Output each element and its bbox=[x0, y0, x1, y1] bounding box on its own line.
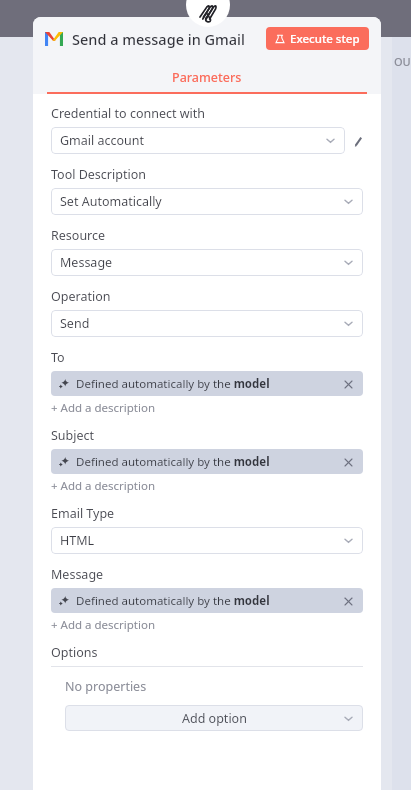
staticText: No properties bbox=[65, 678, 147, 695]
button[interactable]: HTML bbox=[51, 527, 363, 554]
button[interactable]: + Add a description bbox=[51, 400, 156, 416]
staticText: To bbox=[51, 349, 65, 366]
button[interactable]: Defined automatically by the model bbox=[51, 588, 363, 613]
staticText: Email Type bbox=[51, 505, 115, 522]
button[interactable]: Gmail account bbox=[51, 127, 345, 154]
staticText: + Add a description bbox=[51, 478, 156, 494]
button[interactable]: + Add a description bbox=[51, 478, 156, 494]
staticText: Parameters bbox=[172, 69, 242, 86]
staticText: Message bbox=[60, 254, 113, 271]
staticText: Gmail account bbox=[60, 132, 145, 149]
staticText: Defined automatically by the model bbox=[76, 593, 270, 609]
staticText: HTML bbox=[60, 532, 95, 549]
staticText: Message bbox=[51, 566, 104, 583]
staticText: Send bbox=[60, 315, 90, 332]
staticText: + Add a description bbox=[51, 617, 156, 633]
staticText: Add option bbox=[182, 710, 247, 727]
staticText: OU bbox=[394, 54, 411, 69]
staticText: Subject bbox=[51, 427, 95, 444]
staticText: Defined automatically by the model bbox=[76, 376, 270, 392]
button[interactable]: Execute step bbox=[266, 27, 369, 50]
button[interactable]: Node icon bbox=[186, 0, 230, 27]
button[interactable]: Send bbox=[51, 310, 363, 337]
button[interactable]: Remove bbox=[341, 455, 355, 469]
staticText: Send a message in Gmail bbox=[72, 29, 245, 49]
button[interactable]: Defined automatically by the model bbox=[51, 449, 363, 474]
button[interactable]: Add option bbox=[65, 705, 363, 731]
button[interactable]: Remove bbox=[341, 377, 355, 391]
staticText: Execute step bbox=[290, 31, 360, 47]
button[interactable]: Message bbox=[51, 249, 363, 276]
button[interactable]: + Add a description bbox=[51, 617, 156, 633]
staticText: Options bbox=[51, 644, 98, 661]
staticText: Defined automatically by the model bbox=[76, 454, 270, 470]
button[interactable]: Defined automatically by the model bbox=[51, 371, 363, 396]
staticText: Operation bbox=[51, 288, 111, 305]
button[interactable]: Set Automatically bbox=[51, 188, 363, 215]
staticText: + Add a description bbox=[51, 400, 156, 416]
staticText: Credential to connect with bbox=[51, 105, 205, 122]
staticText: Set Automatically bbox=[60, 193, 162, 210]
staticText: Resource bbox=[51, 227, 106, 244]
button[interactable]: Edit credential bbox=[354, 131, 363, 151]
staticText: Tool Description bbox=[51, 166, 146, 183]
button[interactable]: Remove bbox=[341, 594, 355, 608]
button[interactable]: Parameters bbox=[33, 60, 381, 94]
